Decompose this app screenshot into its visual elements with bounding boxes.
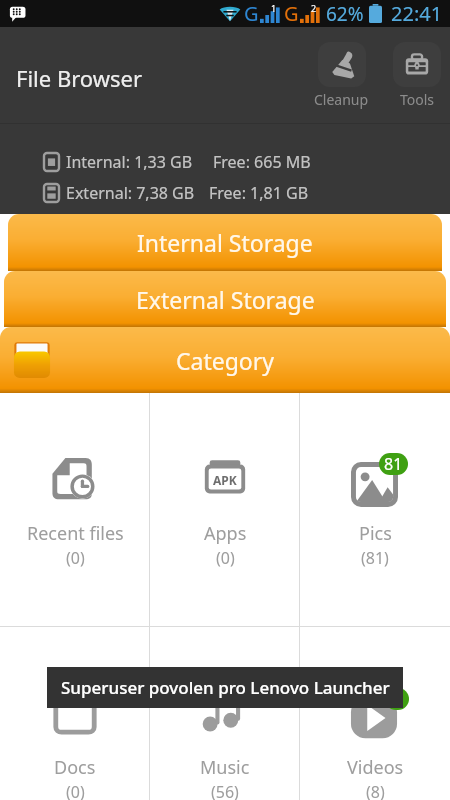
staticText: (0) [66, 781, 85, 800]
staticText: Category [176, 345, 275, 376]
staticText: 22:41 [391, 0, 443, 27]
staticText: Recent files [27, 521, 124, 546]
staticText: 81 [384, 453, 403, 475]
button[interactable]: Internal Storage [8, 214, 442, 271]
staticText: Music [200, 755, 250, 780]
staticText: (81) [361, 547, 389, 569]
staticText: 62% [326, 1, 364, 27]
button[interactable]: 81 [300, 393, 450, 626]
other: Cleanup [327, 49, 358, 80]
staticText: Apps [204, 521, 247, 546]
staticText: 8 [392, 688, 402, 710]
staticText: APK [213, 472, 237, 488]
staticText: 2 [311, 2, 317, 14]
staticText: File Browser [16, 63, 143, 93]
button[interactable]: APK [150, 393, 300, 626]
staticText: (8) [366, 781, 385, 800]
staticText: G [284, 0, 299, 27]
staticText: 1 [271, 2, 277, 14]
staticText: Free: 665 MB [213, 151, 311, 173]
staticText: Free: 1,81 GB [209, 182, 309, 204]
staticText: (56) [211, 781, 239, 800]
button[interactable]: External Storage [4, 271, 446, 327]
staticText: Pics [359, 521, 392, 546]
button[interactable]: Category [0, 327, 450, 393]
staticText: Internal Storage [137, 227, 313, 258]
staticText: Videos [347, 755, 404, 780]
staticText: G [244, 0, 259, 27]
staticText: (0) [66, 547, 85, 569]
button[interactable]: Tools [391, 42, 443, 109]
button[interactable]: Recent files [0, 393, 150, 626]
staticText: External Storage [136, 284, 315, 315]
button[interactable]: Docs [0, 627, 150, 800]
staticText: Superuser povolen pro Lenovo Launcher [61, 676, 390, 699]
staticText: External: 7,38 GB [66, 182, 195, 204]
button[interactable]: Music [150, 627, 300, 800]
button[interactable]: 8 [300, 627, 450, 800]
staticText: Internal: 1,33 GB [66, 151, 193, 173]
staticText: Tools [400, 90, 435, 109]
staticText: Cleanup [314, 90, 369, 109]
staticText: (0) [216, 547, 235, 569]
other: Tools [403, 51, 431, 79]
button[interactable]: Cleanup [312, 42, 371, 109]
staticText: Docs [54, 755, 96, 780]
